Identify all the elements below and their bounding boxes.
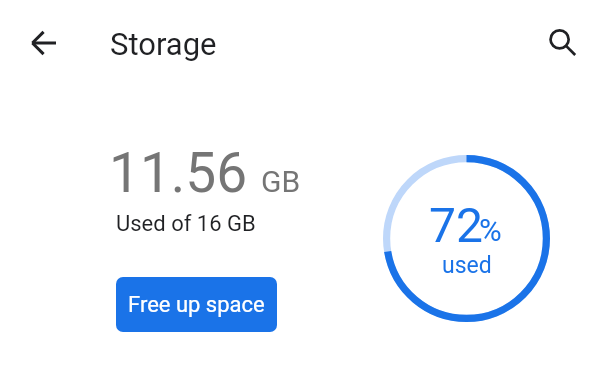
staticText: 11.56 (109, 141, 248, 205)
staticText: used (442, 252, 492, 279)
button[interactable]: Free up space (116, 277, 277, 332)
staticText: GB (261, 164, 301, 199)
button[interactable]: Back (20, 19, 68, 67)
staticText: % (479, 212, 502, 248)
button[interactable]: Search (538, 18, 586, 66)
staticText: 72 (429, 197, 483, 253)
staticText: Free up space (128, 292, 265, 318)
staticText: Used of 16 GB (116, 211, 256, 237)
staticText: Storage (110, 26, 217, 62)
